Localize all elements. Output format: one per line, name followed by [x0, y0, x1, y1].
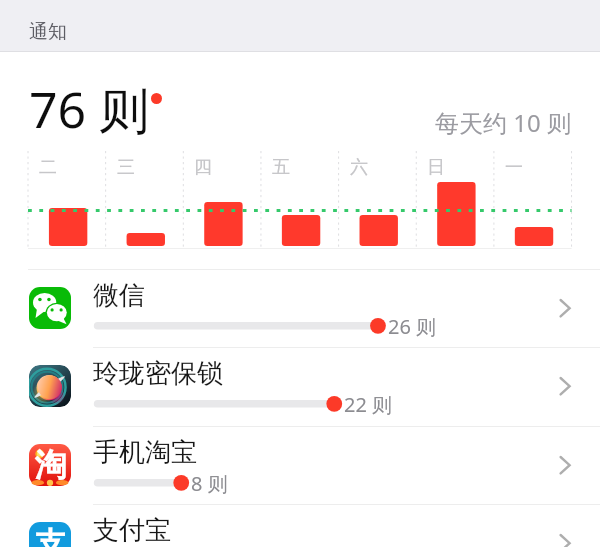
button[interactable]: 淘	[0, 426, 600, 504]
staticText: 四	[194, 156, 212, 179]
staticText: 支	[35, 524, 66, 547]
staticText: 每天约 10 则	[435, 106, 571, 139]
button[interactable]: 玲珑密保锁	[0, 347, 600, 425]
staticText: 二	[39, 156, 57, 179]
staticText: 76 则	[29, 75, 150, 143]
other: Details	[558, 455, 574, 471]
other: Details	[558, 533, 574, 547]
staticText: 微信	[93, 279, 145, 312]
staticText: 三	[117, 156, 135, 179]
staticText: 支付宝	[93, 514, 171, 547]
other: Details	[558, 376, 574, 392]
button[interactable]: 微信	[0, 269, 600, 347]
staticText: 手机淘宝	[93, 436, 197, 469]
button[interactable]: 支	[0, 504, 600, 547]
staticText: 淘	[35, 445, 67, 485]
staticText: 玲珑密保锁	[93, 357, 223, 390]
staticText: 26 则	[388, 313, 437, 340]
staticText: 8 则	[191, 470, 228, 497]
staticText: 六	[350, 156, 368, 179]
staticText: 五	[272, 156, 290, 179]
staticText: 通知	[29, 20, 67, 44]
staticText: 22 则	[344, 391, 393, 418]
staticText: 日	[427, 156, 445, 179]
staticText: 一	[505, 156, 523, 179]
other: Details	[558, 298, 574, 314]
